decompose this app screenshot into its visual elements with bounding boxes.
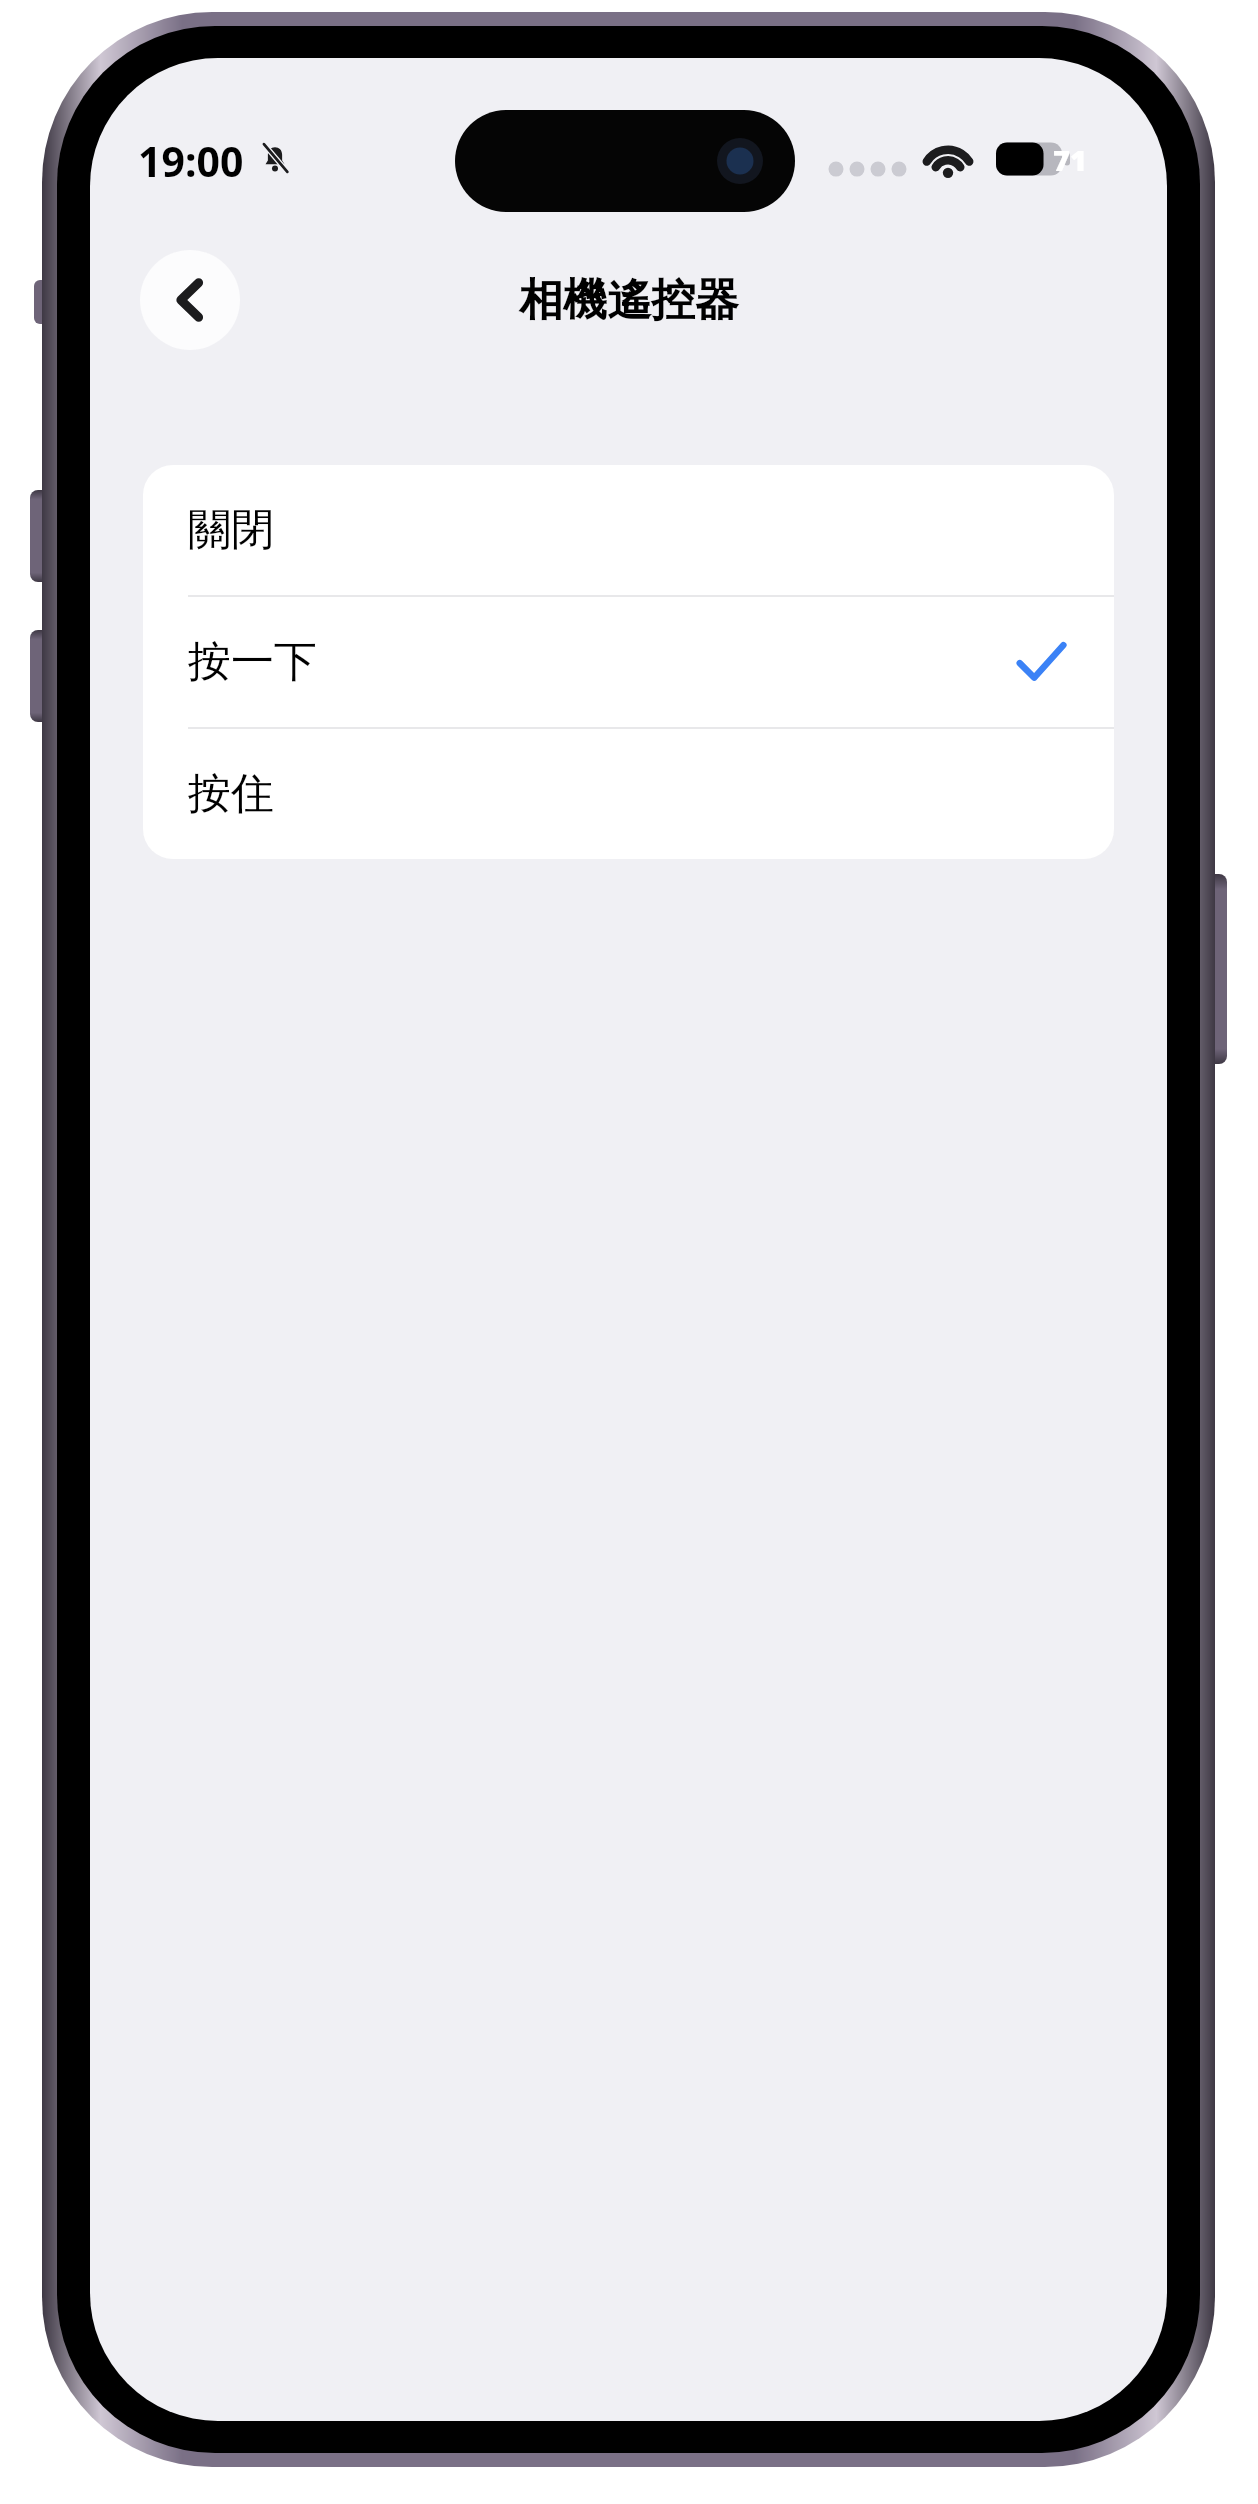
button[interactable]: 按一下	[143, 597, 1114, 727]
staticText: 關閉	[188, 503, 274, 557]
button[interactable]: 返回	[140, 250, 240, 350]
staticText: 19:00	[138, 133, 244, 183]
staticText: 按住	[188, 767, 274, 821]
button[interactable]: 關閉	[143, 465, 1114, 595]
staticText: 相機遙控器	[519, 273, 739, 328]
staticText: 71	[1053, 140, 1087, 179]
staticText: 按一下	[188, 635, 317, 689]
button[interactable]: 按住	[143, 729, 1114, 859]
